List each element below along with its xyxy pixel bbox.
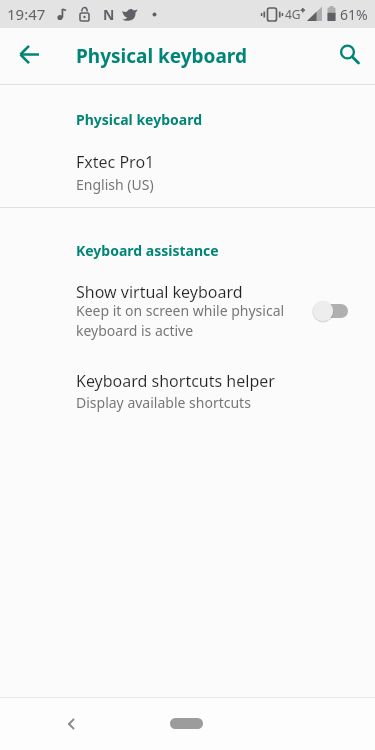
button[interactable]: Show virtual keyboard [0,272,375,352]
staticText: Keyboard assistance [76,241,219,260]
button[interactable] [325,32,373,80]
staticText: 4G [285,6,301,22]
staticText: Physical keyboard [76,43,247,69]
button[interactable] [170,718,203,729]
staticText: N [103,5,115,24]
button[interactable] [306,297,354,325]
staticText: Display available shortcuts [76,393,251,412]
staticText: Fxtec Pro1 [76,151,155,173]
button[interactable] [47,700,95,748]
staticText: Physical keyboard [76,110,202,129]
staticText: Keep it on screen while physical keyboar… [76,301,285,340]
button[interactable] [6,32,54,80]
staticText: 19:47 [7,4,46,24]
staticText: Keyboard shortcuts helper [76,370,275,392]
staticText: 61% [340,5,368,24]
button[interactable]: Fxtec Pro1 [0,140,375,206]
staticText: Show virtual keyboard [76,281,243,303]
staticText: English (US) [76,175,154,194]
button[interactable]: Keyboard shortcuts helper [0,360,375,420]
